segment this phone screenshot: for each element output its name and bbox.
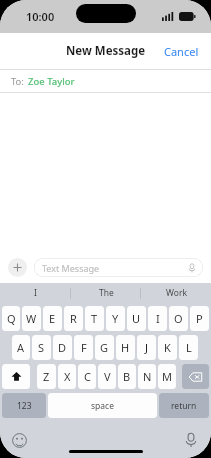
staticText: G — [100, 340, 109, 355]
button[interactable]: N — [138, 364, 156, 389]
button[interactable]: Text Message — [34, 258, 203, 277]
button[interactable]: H — [116, 335, 135, 360]
staticText: I — [34, 287, 37, 299]
staticText: M — [162, 369, 172, 384]
staticText: Z — [43, 369, 50, 384]
button[interactable]: W — [22, 306, 41, 331]
button[interactable]: return — [159, 393, 209, 418]
staticText: Text Message — [42, 262, 100, 274]
button[interactable]: X — [58, 364, 76, 389]
button[interactable]: A — [12, 335, 30, 360]
button[interactable]: E — [43, 306, 62, 331]
staticText: N — [143, 369, 152, 384]
staticText: U — [132, 311, 141, 326]
button[interactable]: F — [74, 335, 93, 360]
staticText: J — [145, 340, 149, 355]
staticText: T — [91, 311, 98, 326]
button[interactable]: space — [48, 393, 157, 418]
button[interactable]: T — [85, 306, 104, 331]
staticText: R — [70, 311, 77, 326]
button[interactable]: K — [158, 335, 177, 360]
staticText: Zoe Taylor — [28, 75, 75, 88]
staticText: 123 — [17, 400, 32, 412]
staticText: K — [164, 340, 171, 355]
staticText: 10:00 — [26, 9, 55, 24]
button[interactable]: Voice input — [183, 432, 199, 448]
staticText: L — [186, 340, 192, 355]
staticText: S — [38, 340, 45, 355]
staticText: space — [91, 400, 114, 412]
button[interactable]: Emoji — [12, 433, 27, 448]
button[interactable]: Work — [141, 283, 211, 303]
staticText: Q — [7, 311, 16, 326]
button[interactable]: I — [0, 283, 71, 303]
button[interactable]: Q — [2, 306, 20, 331]
button[interactable]: I — [148, 306, 167, 331]
staticText: V — [104, 369, 111, 384]
button[interactable]: P — [190, 306, 209, 331]
staticText: Work — [166, 287, 187, 299]
staticText: C — [84, 369, 91, 384]
staticText: B — [123, 369, 131, 384]
button[interactable]: J — [137, 335, 156, 360]
button[interactable]: M — [158, 364, 176, 389]
button[interactable]: B — [118, 364, 136, 389]
staticText: A — [17, 340, 25, 355]
button[interactable]: R — [64, 306, 83, 331]
button[interactable]: Add attachment — [8, 258, 27, 277]
button[interactable]: S — [32, 335, 51, 360]
staticText: X — [64, 369, 71, 384]
button[interactable]: V — [98, 364, 116, 389]
button[interactable]: Cancel — [152, 36, 211, 67]
staticText: O — [174, 311, 183, 326]
staticText: P — [196, 311, 203, 326]
button[interactable]: C — [78, 364, 96, 389]
button[interactable]: To: — [0, 70, 211, 92]
staticText: Cancel — [164, 44, 199, 59]
button[interactable]: U — [127, 306, 146, 331]
button[interactable]: Z — [37, 364, 56, 389]
button[interactable]: Backspace — [182, 364, 209, 389]
staticText: return — [171, 400, 197, 412]
staticText: H — [121, 340, 130, 355]
button[interactable]: The — [71, 283, 141, 303]
staticText: Y — [112, 311, 119, 326]
staticText: D — [58, 340, 67, 355]
button[interactable]: G — [95, 335, 114, 360]
staticText: The — [99, 287, 114, 299]
button[interactable]: Shift — [2, 364, 30, 389]
button[interactable]: L — [179, 335, 198, 360]
staticText: W — [26, 311, 37, 326]
button[interactable]: D — [53, 335, 72, 360]
staticText: New Message — [66, 43, 146, 59]
button[interactable]: Dictate — [187, 263, 197, 273]
button[interactable]: O — [169, 306, 188, 331]
button[interactable]: 123 — [2, 393, 46, 418]
staticText: I — [156, 311, 160, 326]
staticText: E — [49, 311, 56, 326]
staticText: To: — [11, 75, 24, 88]
staticText: F — [81, 340, 87, 355]
button[interactable]: Y — [106, 306, 125, 331]
